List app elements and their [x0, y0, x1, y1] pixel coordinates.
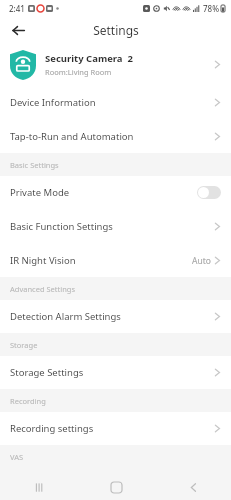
staticText: Room:Living Room [45, 67, 112, 77]
staticText: Settings [93, 22, 139, 38]
button[interactable]: IR Night Vision [0, 244, 231, 277]
staticText: Auto [192, 255, 211, 267]
staticText: Storage Settings [10, 366, 214, 379]
staticText: 2:41 [9, 3, 25, 14]
button[interactable]: Basic Function Settings [0, 210, 231, 243]
staticText: IR Night Vision [10, 254, 192, 267]
staticText: Recording [10, 396, 46, 406]
button[interactable]: Security Camera 2 [0, 43, 231, 86]
staticText: Tap-to-Run and Automation [10, 130, 214, 143]
staticText: Basic Function Settings [10, 220, 214, 233]
staticText: Private Mode [10, 186, 197, 199]
button[interactable]: Back [177, 474, 209, 500]
staticText: Advanced Settings [10, 284, 75, 294]
staticText: Recording settings [10, 422, 214, 435]
button[interactable]: Storage Settings [0, 356, 231, 389]
button[interactable]: Back [6, 18, 30, 42]
staticText: Basic Settings [10, 160, 59, 170]
button[interactable]: Private Mode [0, 176, 231, 209]
staticText: Security Camera 2 [45, 52, 133, 65]
button[interactable]: Detection Alarm Settings [0, 300, 231, 333]
button[interactable]: Device Information [0, 86, 231, 119]
staticText: Device Information [10, 96, 214, 109]
staticText: Detection Alarm Settings [10, 310, 214, 323]
button[interactable]: Recent apps [23, 474, 55, 500]
staticText: Storage [10, 340, 38, 350]
button[interactable]: Home [100, 474, 132, 500]
button[interactable]: Recording settings [0, 412, 231, 445]
button[interactable]: Private Mode toggle [197, 186, 221, 199]
staticText: 78% [203, 3, 219, 14]
button[interactable]: Tap-to-Run and Automation [0, 120, 231, 153]
staticText: VAS [10, 452, 24, 462]
